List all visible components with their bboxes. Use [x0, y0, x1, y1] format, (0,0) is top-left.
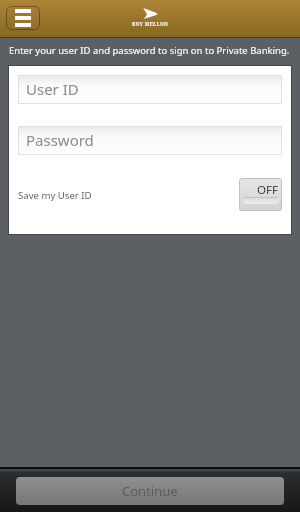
button[interactable]: Continue: [16, 477, 284, 505]
staticText: Continue: [122, 482, 178, 500]
staticText: Enter your user ID and password to sign …: [9, 44, 290, 57]
button[interactable]: OFF: [239, 178, 282, 211]
button[interactable]: Menu: [6, 6, 40, 30]
staticText: OFF: [257, 182, 279, 198]
staticText: Save my User ID: [18, 189, 92, 202]
staticText: Password: [26, 130, 94, 150]
staticText: BNY MELLON: [132, 21, 169, 28]
staticText: User ID: [26, 79, 79, 99]
button[interactable]: Password: [18, 126, 282, 155]
button[interactable]: User ID: [18, 75, 282, 104]
